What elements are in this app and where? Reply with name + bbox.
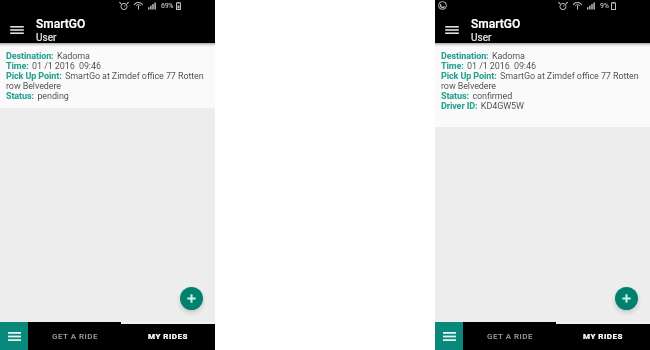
button[interactable]: Open navigation drawer xyxy=(2,15,32,45)
staticText: Driver ID: KD4GW5W xyxy=(441,101,524,111)
button[interactable]: MY RIDES xyxy=(121,322,215,350)
button[interactable]: Add ride xyxy=(180,287,203,310)
staticText: User xyxy=(471,32,492,44)
staticText: SmartGO xyxy=(36,17,86,31)
button[interactable]: Open menu xyxy=(0,322,28,350)
button[interactable]: Open navigation drawer xyxy=(437,15,467,45)
staticText: GET A RIDE xyxy=(487,332,533,341)
staticText: Pick Up Point: SmartGo at Zimdef office … xyxy=(6,71,204,91)
staticText: GET A RIDE xyxy=(52,332,98,341)
staticText: User xyxy=(36,32,57,44)
staticText: Time: 01 /1 2016 09:46 xyxy=(441,61,536,71)
staticText: MY RIDES xyxy=(583,332,623,341)
button[interactable]: MY RIDES xyxy=(556,322,650,350)
staticText: 9% xyxy=(600,2,609,10)
staticText: Time: 01 /1 2016 09:46 xyxy=(6,61,101,71)
staticText: Destination: Kadoma xyxy=(6,51,90,61)
button[interactable]: Add ride xyxy=(615,287,638,310)
staticText: Status: pending xyxy=(6,91,69,101)
staticText: Pick Up Point: SmartGo at Zimdef office … xyxy=(441,71,639,91)
staticText: 69% xyxy=(161,2,174,10)
staticText: MY RIDES xyxy=(148,332,188,341)
staticText: Destination: Kadoma xyxy=(441,51,525,61)
button[interactable]: GET A RIDE xyxy=(463,322,556,350)
staticText: Status: confirmed xyxy=(441,91,513,101)
button[interactable]: GET A RIDE xyxy=(28,322,121,350)
button[interactable]: Open menu xyxy=(435,322,463,350)
staticText: SmartGO xyxy=(471,17,521,31)
